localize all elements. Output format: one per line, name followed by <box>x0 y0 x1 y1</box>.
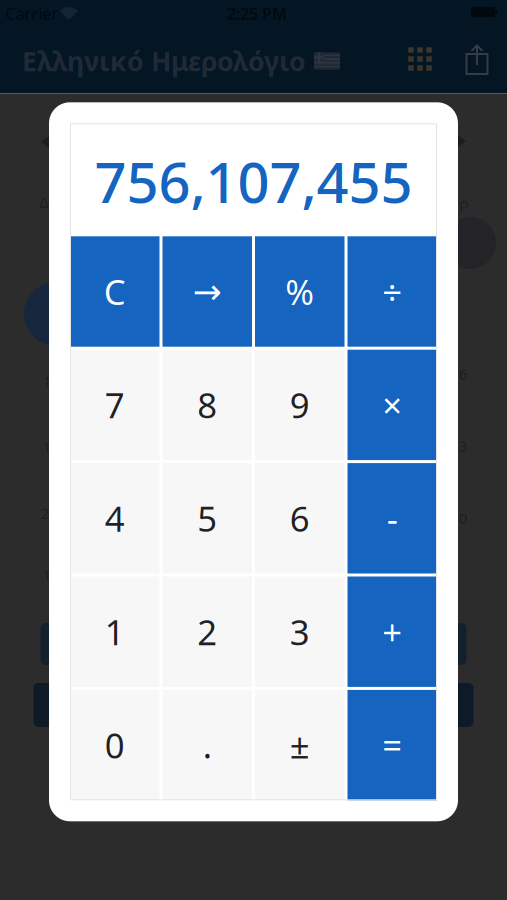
button[interactable]: 6 <box>255 463 344 573</box>
button[interactable]: 9 <box>255 350 344 460</box>
button[interactable]: % <box>255 236 344 347</box>
button[interactable]: . <box>162 690 252 800</box>
button[interactable]: 1 <box>70 576 159 687</box>
button[interactable]: 4 <box>70 463 159 573</box>
staticText: Δ <box>39 192 48 212</box>
staticText: 9 <box>290 382 310 428</box>
staticText: % <box>285 268 314 314</box>
staticText: 6 <box>459 364 467 384</box>
staticText: 1 <box>43 565 51 585</box>
staticText: 1 <box>43 437 51 457</box>
button[interactable]: 0 <box>70 690 159 800</box>
staticText: Carrier <box>5 3 58 24</box>
staticText: 6 <box>290 495 310 541</box>
button[interactable]: 8 <box>162 350 252 460</box>
staticText: 2:25 PM <box>227 3 287 24</box>
button[interactable]: 5 <box>162 463 252 573</box>
staticText: - <box>387 495 398 541</box>
button[interactable]: ± <box>255 690 344 800</box>
staticText: C <box>104 268 126 314</box>
staticText: 1 <box>105 609 125 655</box>
staticText: 2 <box>197 609 217 655</box>
staticText: = <box>382 722 402 768</box>
staticText: 756,107,455 <box>94 144 412 218</box>
staticText: ÷ <box>382 268 402 314</box>
button[interactable]: 7 <box>70 350 159 460</box>
button[interactable]: ÷ <box>347 236 437 347</box>
staticText: 1 <box>43 371 51 391</box>
button[interactable]: 3 <box>255 576 344 687</box>
button[interactable]: - <box>347 463 437 573</box>
staticText: . <box>203 722 212 768</box>
staticText: 2 <box>41 503 49 523</box>
staticText: + <box>382 609 402 655</box>
button[interactable]: + <box>347 576 437 687</box>
button[interactable]: Share <box>465 44 489 76</box>
staticText: ± <box>290 722 310 768</box>
staticText: 5 <box>197 495 217 541</box>
staticText: 8 <box>197 382 217 428</box>
button[interactable]: × <box>347 350 437 460</box>
button[interactable]: → <box>162 236 252 347</box>
staticText: ρ <box>459 193 468 213</box>
staticText: 0 <box>459 508 467 528</box>
button[interactable]: C <box>70 236 159 347</box>
staticText: 4 <box>105 495 125 541</box>
button[interactable]: 2 <box>162 576 252 687</box>
button[interactable]: = <box>347 690 437 800</box>
staticText: → <box>193 272 222 311</box>
staticText: × <box>382 382 402 428</box>
staticText: 0 <box>105 722 125 768</box>
staticText: 3 <box>290 609 310 655</box>
staticText: 7 <box>105 382 125 428</box>
staticText: 3 <box>459 436 467 456</box>
button[interactable]: Apps <box>408 47 432 70</box>
staticText: Ελληνικό Ημερολόγιο <box>22 43 306 79</box>
